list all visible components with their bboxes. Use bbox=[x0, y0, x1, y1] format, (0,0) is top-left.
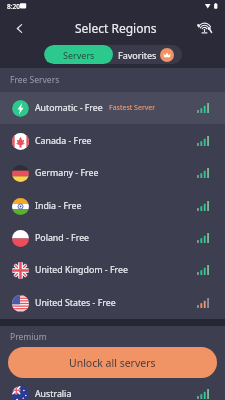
button[interactable]: United Kingdom - Free bbox=[0, 254, 225, 286]
staticText: India - Free bbox=[35, 200, 82, 212]
staticText: Automatic - Free bbox=[35, 102, 103, 114]
button[interactable]: Servers bbox=[44, 45, 113, 64]
staticText: Select Regions bbox=[75, 20, 157, 36]
staticText: Poland - Free bbox=[35, 232, 90, 244]
button[interactable]: Connection settings bbox=[192, 16, 216, 40]
staticText: Premium bbox=[10, 331, 47, 343]
staticText: Canada - Free bbox=[35, 135, 92, 147]
staticText: Servers bbox=[63, 49, 95, 61]
button[interactable]: Canada - Free bbox=[0, 125, 225, 157]
staticText: Free Servers bbox=[10, 74, 60, 86]
button[interactable]: Back bbox=[7, 16, 31, 40]
staticText: Australia bbox=[35, 388, 72, 400]
button[interactable]: Automatic - Free bbox=[0, 92, 225, 124]
button[interactable]: Germany - Free bbox=[0, 157, 225, 189]
button[interactable]: Favorites bbox=[113, 45, 182, 64]
staticText: Unlock all servers bbox=[69, 356, 156, 370]
button[interactable]: United States - Free bbox=[0, 287, 225, 319]
staticText: Germany - Free bbox=[35, 167, 99, 179]
staticText: Favorites bbox=[118, 49, 157, 61]
button[interactable]: India - Free bbox=[0, 190, 225, 222]
button[interactable]: Australia bbox=[0, 378, 225, 400]
staticText: Fastest Server bbox=[109, 103, 156, 113]
staticText: United States - Free bbox=[35, 297, 116, 309]
button[interactable]: Unlock all servers bbox=[8, 347, 217, 378]
staticText: United Kingdom - Free bbox=[35, 264, 128, 276]
button[interactable]: Poland - Free bbox=[0, 222, 225, 254]
staticText: 8:20 bbox=[7, 2, 20, 11]
